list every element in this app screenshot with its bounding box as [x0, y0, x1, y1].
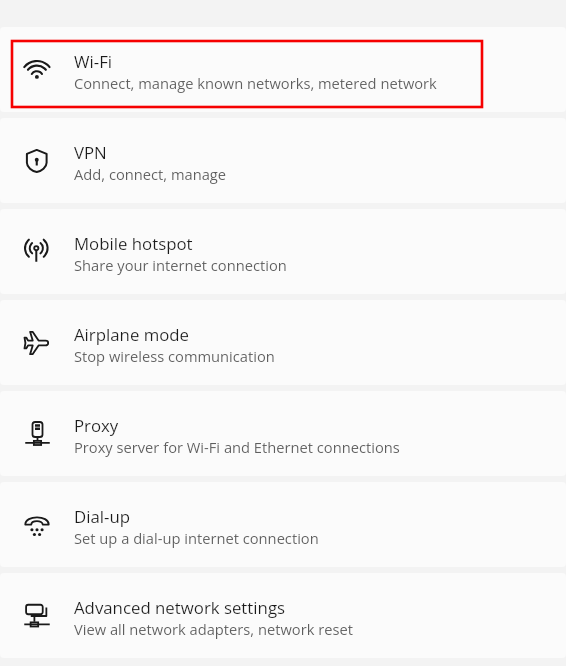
button[interactable]: Dial-up	[0, 482, 566, 567]
staticText: Add, connect, manage	[74, 164, 227, 184]
staticText: Airplane mode	[74, 323, 190, 346]
button[interactable]: Airplane mode	[0, 300, 566, 385]
staticText: Share your internet connection	[74, 255, 287, 275]
button[interactable]: VPN	[0, 118, 566, 203]
staticText: Wi-Fi	[74, 50, 113, 73]
button[interactable]: Wi-Fi	[0, 27, 566, 112]
staticText: Set up a dial-up internet connection	[74, 528, 319, 548]
button[interactable]: Advanced network settings	[0, 573, 566, 658]
staticText: Dial-up	[74, 505, 130, 528]
staticText: Mobile hotspot	[74, 232, 193, 255]
staticText: VPN	[74, 141, 107, 164]
button[interactable]: Proxy	[0, 391, 566, 476]
staticText: Proxy server for Wi-Fi and Ethernet conn…	[74, 437, 400, 457]
staticText: Proxy	[74, 414, 119, 437]
staticText: View all network adapters, network reset	[74, 619, 353, 639]
staticText: Stop wireless communication	[74, 346, 275, 366]
button[interactable]: Mobile hotspot	[0, 209, 566, 294]
staticText: Connect, manage known networks, metered …	[74, 73, 437, 93]
staticText: Advanced network settings	[74, 596, 286, 619]
